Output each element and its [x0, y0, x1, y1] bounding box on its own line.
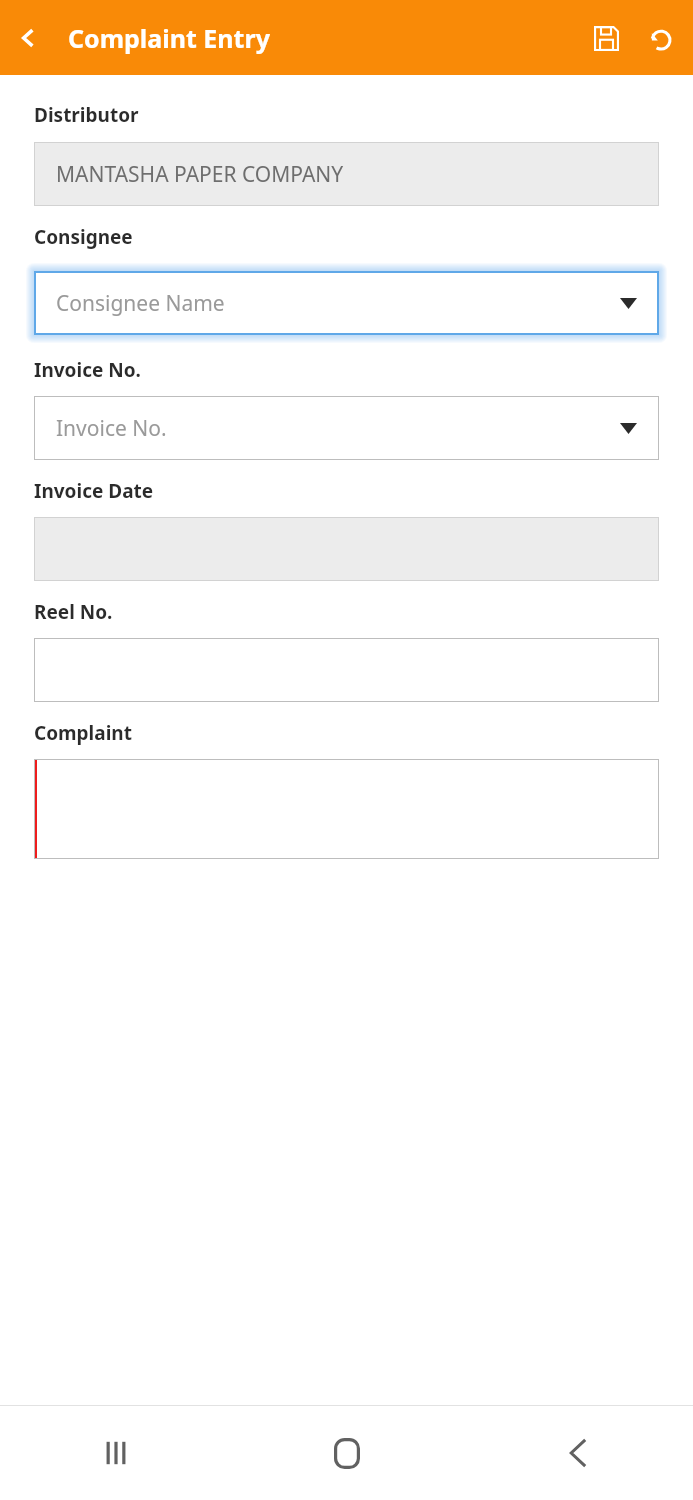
button[interactable]: Save	[583, 15, 629, 61]
staticText: Invoice No.	[56, 414, 167, 443]
staticText: Complaint	[34, 720, 132, 746]
button[interactable]: Invoice No.	[34, 396, 659, 460]
button[interactable]: Consignee Name	[34, 271, 659, 335]
button[interactable]	[34, 759, 659, 859]
button[interactable]	[34, 638, 659, 702]
button[interactable]: MANTASHA PAPER COMPANY	[34, 142, 659, 206]
staticText: MANTASHA PAPER COMPANY	[56, 160, 344, 189]
staticText: Consignee Name	[56, 289, 225, 318]
button[interactable]: Home	[231, 1406, 462, 1500]
button[interactable]: Reset	[637, 15, 683, 61]
staticText: Invoice Date	[34, 478, 154, 504]
staticText: Invoice No.	[34, 357, 141, 383]
button[interactable]: Recent apps	[0, 1406, 231, 1500]
button[interactable]: Back	[4, 14, 52, 62]
staticText: Reel No.	[34, 599, 113, 625]
staticText: Distributor	[34, 102, 139, 128]
button[interactable]: Back	[462, 1406, 693, 1500]
button[interactable]	[34, 517, 659, 581]
staticText: Complaint Entry	[68, 21, 270, 55]
staticText: Consignee	[34, 224, 133, 250]
